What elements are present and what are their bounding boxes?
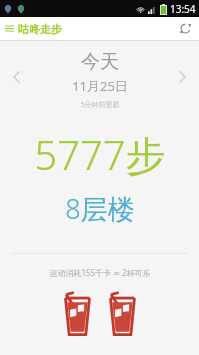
staticText: 5分钟前更新: [80, 100, 120, 110]
button[interactable]: 8层楼: [65, 190, 135, 227]
staticText: 今天: [81, 50, 119, 74]
button[interactable]: Previous day: [6, 64, 27, 90]
button[interactable]: Menu: [0, 20, 19, 37]
button[interactable]: Next day: [172, 64, 193, 90]
staticText: 运动消耗155千卡 ≈ 2杯可乐: [49, 267, 151, 278]
button[interactable]: Refresh: [172, 18, 199, 39]
staticText: 13:54: [170, 2, 196, 16]
staticText: 咕咚走步: [18, 22, 62, 36]
button[interactable]: 5777步: [34, 127, 166, 182]
staticText: 11月25日: [72, 77, 128, 95]
